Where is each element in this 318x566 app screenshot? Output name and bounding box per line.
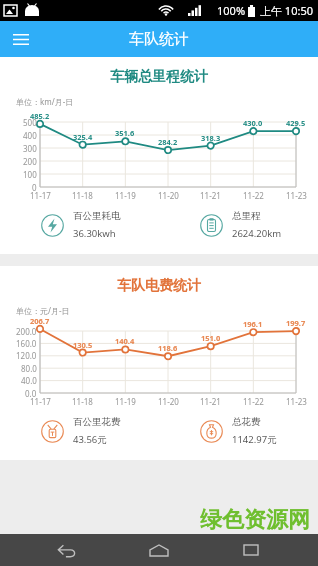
button[interactable]: 百公里耗电 xyxy=(0,210,159,240)
button[interactable]: Recents xyxy=(226,534,276,566)
staticText: 百公里花费 xyxy=(73,416,121,428)
staticText: 11-20 xyxy=(158,190,179,201)
button[interactable]: Back xyxy=(42,534,92,566)
staticText: 140.4 xyxy=(115,336,135,346)
staticText: 11-19 xyxy=(115,396,136,407)
staticText: 11-22 xyxy=(243,190,264,201)
button[interactable]: Home xyxy=(134,534,184,566)
staticText: 11-17 xyxy=(30,396,51,407)
staticText: 318.3 xyxy=(201,133,221,143)
staticText: 0 xyxy=(32,182,37,193)
staticText: 284.2 xyxy=(158,137,178,147)
staticText: 总里程 xyxy=(232,210,261,222)
staticText: 车辆总里程统计 xyxy=(0,68,318,86)
staticText: 485.2 xyxy=(30,111,50,121)
staticText: 11-18 xyxy=(72,190,93,201)
button[interactable]: Menu xyxy=(6,24,36,54)
staticText: 400 xyxy=(23,130,37,141)
staticText: 上午 10:50 xyxy=(260,3,313,18)
staticText: 196.1 xyxy=(243,319,263,329)
staticText: 206.7 xyxy=(30,316,50,326)
staticText: 11-21 xyxy=(200,190,221,201)
staticText: 36.30kwh xyxy=(73,227,116,240)
staticText: 单位：元/月-日 xyxy=(16,305,70,316)
staticText: 2624.20km xyxy=(232,227,282,240)
staticText: 总花费 xyxy=(232,416,261,428)
staticText: 160.0 xyxy=(16,338,37,349)
staticText: 40.0 xyxy=(21,375,37,386)
staticText: 500 xyxy=(23,117,37,128)
staticText: 11-20 xyxy=(158,396,179,407)
staticText: 车队电费统计 xyxy=(0,277,318,295)
staticText: 200 xyxy=(23,156,37,167)
staticText: 100% xyxy=(217,3,246,18)
staticText: 200.0 xyxy=(16,326,37,337)
staticText: 351.6 xyxy=(115,128,135,138)
staticText: 11-17 xyxy=(30,190,51,201)
staticText: 1142.97元 xyxy=(232,433,277,446)
staticText: 车队统计 xyxy=(129,30,189,49)
staticText: 325.4 xyxy=(73,132,93,142)
staticText: 11-21 xyxy=(200,396,221,407)
staticText: 43.56元 xyxy=(73,433,107,446)
staticText: 151.0 xyxy=(201,333,221,343)
staticText: 11-19 xyxy=(115,190,136,201)
staticText: 100 xyxy=(23,169,37,180)
staticText: 118.6 xyxy=(158,343,178,353)
button[interactable]: 百公里花费 xyxy=(0,416,159,446)
staticText: 430.0 xyxy=(243,118,263,128)
staticText: 199.7 xyxy=(286,318,306,328)
staticText: 百公里耗电 xyxy=(73,210,121,222)
staticText: 11-23 xyxy=(286,190,307,201)
staticText: 429.5 xyxy=(286,118,306,128)
button[interactable]: 总里程 xyxy=(159,210,318,240)
staticText: 80.0 xyxy=(21,363,37,374)
staticText: 11-18 xyxy=(72,396,93,407)
staticText: 130.5 xyxy=(73,340,93,350)
staticText: 120.0 xyxy=(16,350,37,361)
staticText: 单位：km/月-日 xyxy=(16,96,74,107)
staticText: 0.0 xyxy=(25,388,37,399)
staticText: 11-22 xyxy=(243,396,264,407)
staticText: 11-23 xyxy=(286,396,307,407)
staticText: 绿色资源网 xyxy=(200,506,310,534)
button[interactable]: 总花费 xyxy=(159,416,318,446)
staticText: 300 xyxy=(23,143,37,154)
